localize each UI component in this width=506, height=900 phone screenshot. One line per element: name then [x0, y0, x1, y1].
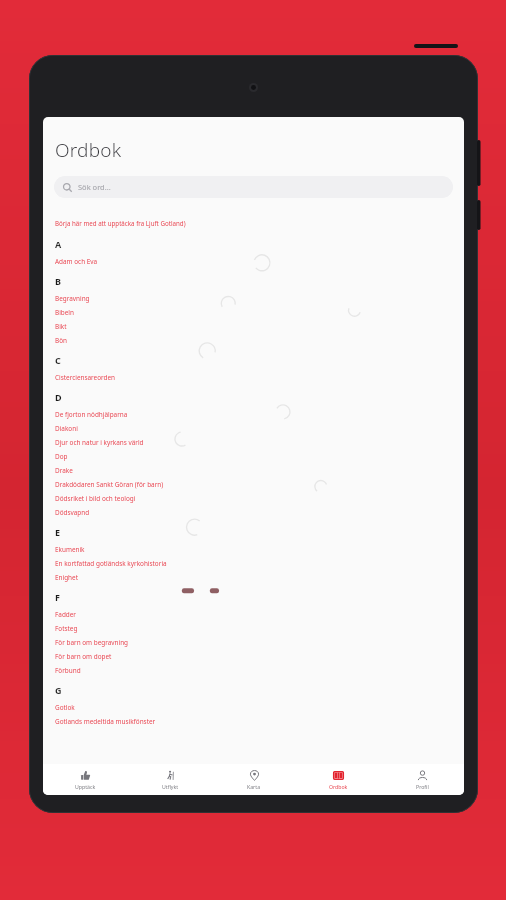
staticText: Drakdödaren Sankt Göran (för barn): [55, 480, 164, 489]
staticText: De fjorton nödhjälparna: [55, 410, 128, 419]
button[interactable]: Dop: [55, 449, 464, 463]
button[interactable]: Gotlands medeltida musikfönster: [55, 714, 464, 728]
staticText: Gotlok: [55, 703, 75, 712]
button[interactable]: Bikt: [55, 319, 464, 333]
staticText: B: [55, 275, 61, 287]
staticText: Djur och natur i kyrkans värld: [55, 438, 144, 447]
button[interactable]: En kortfattad gotländsk kyrkohistoria: [55, 556, 464, 570]
staticText: Bibeln: [55, 308, 74, 317]
staticText: Karta: [247, 783, 261, 790]
staticText: För barn om begravning: [55, 638, 129, 647]
staticText: C: [55, 354, 61, 366]
staticText: Förbund: [55, 666, 81, 675]
staticText: Fotsteg: [55, 624, 78, 633]
button[interactable]: Karta: [212, 764, 296, 795]
staticText: Upptäck: [75, 783, 96, 790]
staticText: Ordbok: [329, 783, 348, 790]
staticText: Ordbok: [55, 137, 122, 163]
button[interactable]: Sök ord...: [54, 176, 453, 198]
staticText: Bön: [55, 336, 67, 345]
staticText: Bikt: [55, 322, 67, 331]
staticText: Enighet: [55, 573, 78, 582]
staticText: G: [55, 684, 62, 696]
button[interactable]: Fotsteg: [55, 621, 464, 635]
staticText: Dop: [55, 452, 68, 461]
button[interactable]: Begravning: [55, 291, 464, 305]
button[interactable]: Ordbok: [296, 764, 380, 795]
button[interactable]: Drakdödaren Sankt Göran (för barn): [55, 477, 464, 491]
button[interactable]: Förbund: [55, 663, 464, 677]
staticText: Dödsriket i bild och teologi: [55, 494, 136, 503]
button[interactable]: Upptäck: [43, 764, 128, 795]
button[interactable]: Bön: [55, 333, 464, 347]
staticText: Cisterciensareorden: [55, 373, 116, 382]
button[interactable]: Dödsriket i bild och teologi: [55, 491, 464, 505]
staticText: Profil: [416, 783, 429, 790]
button[interactable]: Profil: [380, 764, 464, 795]
button[interactable]: Fadder: [55, 607, 464, 621]
button[interactable]: Dödsvapnd: [55, 505, 464, 519]
button[interactable]: För barn om dopet: [55, 649, 464, 663]
button[interactable]: Ekumenik: [55, 542, 464, 556]
staticText: Fadder: [55, 610, 77, 619]
staticText: Sök ord...: [78, 182, 111, 192]
staticText: En kortfattad gotländsk kyrkohistoria: [55, 559, 167, 568]
button[interactable]: För barn om begravning: [55, 635, 464, 649]
staticText: Ekumenik: [55, 545, 85, 554]
button[interactable]: Drake: [55, 463, 464, 477]
button[interactable]: De fjorton nödhjälparna: [55, 407, 464, 421]
button[interactable]: Utflykt: [128, 764, 212, 795]
button[interactable]: Bibeln: [55, 305, 464, 319]
button[interactable]: Djur och natur i kyrkans värld: [55, 435, 464, 449]
staticText: Gotlands medeltida musikfönster: [55, 717, 156, 726]
staticText: E: [55, 526, 61, 538]
button[interactable]: Enighet: [55, 570, 464, 584]
button[interactable]: Adam och Eva: [55, 254, 464, 268]
staticText: Drake: [55, 466, 73, 475]
staticText: D: [55, 391, 62, 403]
staticText: Begravning: [55, 294, 90, 303]
staticText: Dödsvapnd: [55, 508, 90, 517]
staticText: Utflykt: [162, 783, 179, 790]
staticText: Adam och Eva: [55, 257, 98, 266]
staticText: F: [55, 591, 60, 603]
staticText: Diakoni: [55, 424, 78, 433]
button[interactable]: Diakoni: [55, 421, 464, 435]
staticText: A: [55, 238, 62, 250]
button[interactable]: Cisterciensareorden: [55, 370, 464, 384]
button[interactable]: Gotlok: [55, 700, 464, 714]
button[interactable]: Börja här med att upptäcka fra Ljuft Got…: [55, 219, 186, 227]
staticText: För barn om dopet: [55, 652, 112, 661]
